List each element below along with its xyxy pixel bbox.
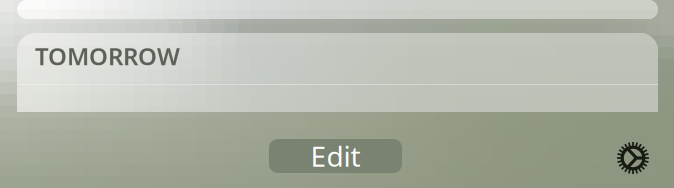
- button[interactable]: Settings: [617, 142, 649, 174]
- button[interactable]: Edit: [269, 139, 402, 173]
- staticText: TOMORROW: [35, 40, 180, 72]
- staticText: Edit: [310, 137, 360, 175]
